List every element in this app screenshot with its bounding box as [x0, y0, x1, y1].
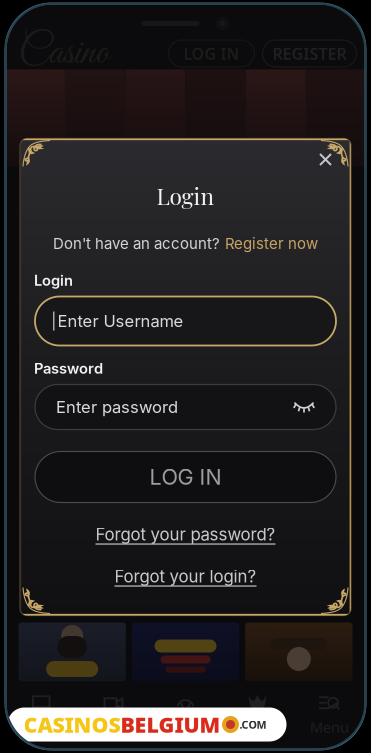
button[interactable]: Promo [221, 691, 293, 739]
button[interactable]: Enter Username [35, 296, 336, 345]
staticText: CASINOS [23, 710, 120, 739]
staticText: Enter Username [57, 311, 183, 331]
staticText: Don't have an account? [53, 234, 220, 253]
staticText: Menu [310, 717, 349, 737]
button[interactable]: Enter password [35, 384, 336, 429]
staticText: Sports [163, 717, 207, 737]
button[interactable]: LOG IN [35, 451, 336, 502]
button[interactable]: Register now [225, 234, 318, 253]
staticText: BELGIUM [120, 710, 220, 739]
staticText: Login [156, 180, 214, 211]
button[interactable]: Sports [149, 691, 221, 739]
staticText: LOG IN [183, 43, 239, 64]
button[interactable]: LOG IN [168, 40, 254, 67]
button[interactable]: Forgot your login? [114, 566, 256, 586]
staticText: Casino [18, 28, 109, 79]
button[interactable]: Live [77, 691, 149, 739]
staticText: Live [100, 717, 127, 737]
staticText: LOG IN [149, 464, 221, 490]
button[interactable]: Menu [293, 691, 365, 739]
staticText: Forgot your login? [114, 566, 256, 587]
button[interactable]: Close [311, 145, 340, 174]
button[interactable]: Forgot your password? [95, 524, 275, 544]
button[interactable]: Casino [5, 691, 77, 739]
staticText: Register now [225, 234, 318, 253]
staticText: Login [34, 272, 73, 289]
staticText: .COM [239, 717, 266, 732]
staticText: Promo [234, 717, 281, 737]
staticText: Casino [18, 717, 64, 737]
staticText: Forgot your password? [95, 524, 275, 545]
button[interactable]: REGISTER [262, 40, 356, 67]
staticText: Password [34, 360, 103, 377]
staticText: Enter password [56, 397, 178, 417]
staticText: REGISTER [272, 43, 346, 64]
